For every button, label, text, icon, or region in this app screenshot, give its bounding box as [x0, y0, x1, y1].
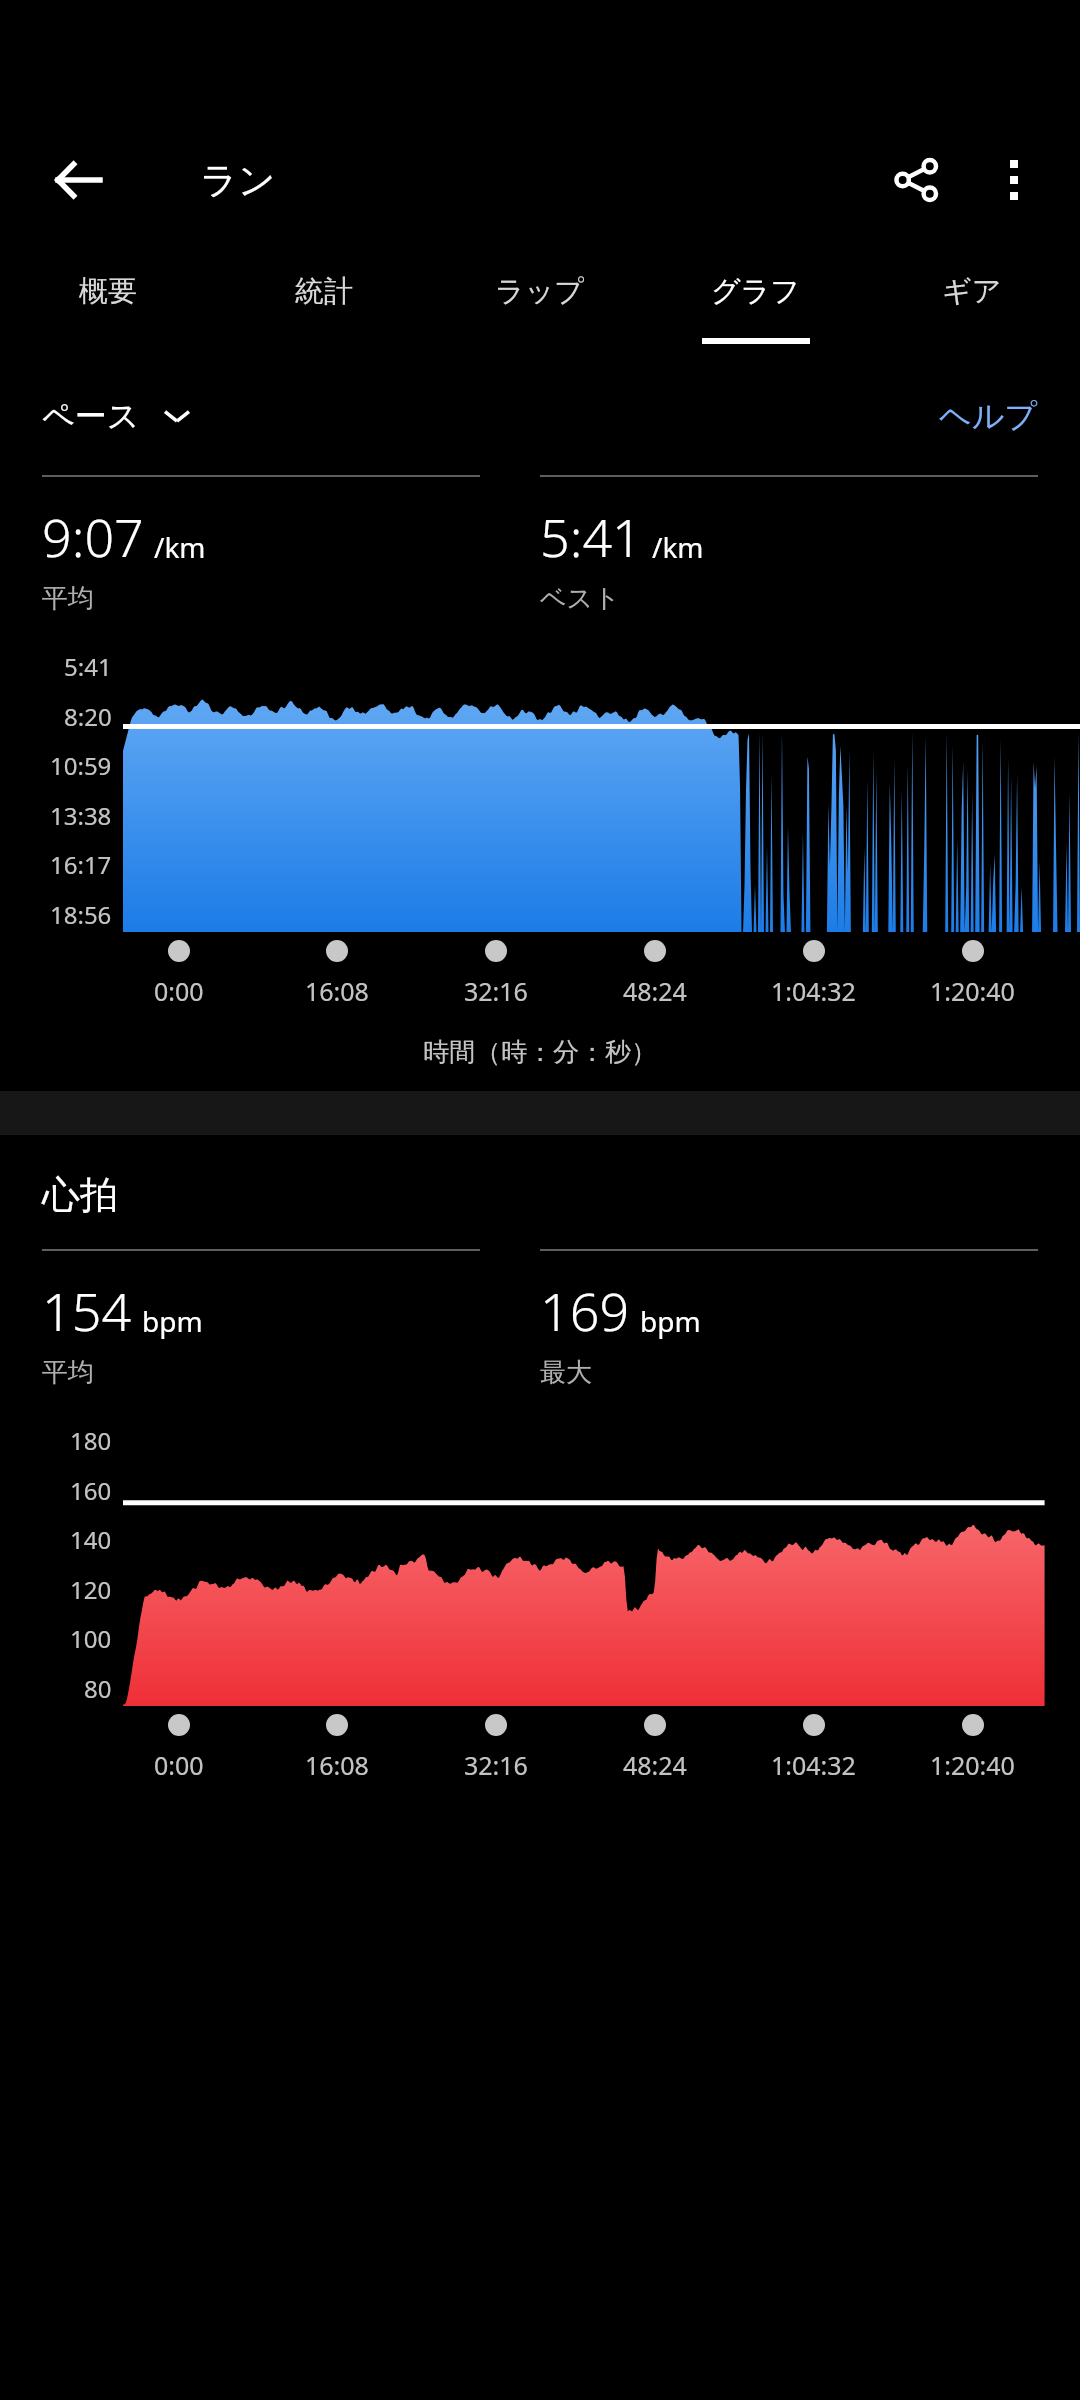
staticText: 100 — [70, 1622, 112, 1655]
staticText: ラップ — [495, 273, 585, 310]
staticText: bpm — [142, 1302, 203, 1340]
button[interactable]: ペース — [42, 396, 190, 436]
staticText: 心拍 — [42, 1171, 118, 1219]
button[interactable]: グラフ — [648, 253, 864, 365]
staticText: 時間（時：分：秒） — [423, 1036, 657, 1069]
staticText: 1:20:40 — [930, 974, 1015, 1008]
staticText: 169 — [540, 1275, 630, 1346]
staticText: 48:24 — [623, 974, 687, 1008]
staticText: 16:08 — [305, 1748, 369, 1782]
staticText: 140 — [70, 1523, 112, 1556]
staticText: 48:24 — [623, 1748, 687, 1782]
staticText: 32:16 — [464, 1748, 528, 1782]
staticText: ラン — [200, 157, 276, 204]
staticText: /km — [154, 528, 206, 566]
button[interactable]: ラップ — [432, 253, 648, 365]
staticText: 13:38 — [50, 799, 112, 832]
button[interactable]: ヘルプ — [939, 396, 1038, 436]
button[interactable]: 共有 — [870, 134, 962, 226]
staticText: 154 — [42, 1275, 132, 1346]
staticText: ベスト — [540, 582, 620, 615]
staticText: ヘルプ — [939, 396, 1038, 436]
staticText: 平均 — [42, 582, 94, 615]
staticText: 1:20:40 — [930, 1748, 1015, 1782]
staticText: 1:04:32 — [771, 974, 856, 1008]
staticText: /km — [652, 528, 704, 566]
staticText: 10:59 — [50, 749, 112, 782]
staticText: 16:08 — [305, 974, 369, 1008]
staticText: 0:00 — [154, 974, 204, 1008]
staticText: 5:41 — [540, 501, 642, 572]
button[interactable]: 統計 — [216, 253, 432, 365]
staticText: 最大 — [540, 1356, 592, 1389]
staticText: 5:41 — [64, 650, 112, 683]
staticText: 120 — [70, 1573, 112, 1606]
staticText: 18:56 — [50, 898, 112, 931]
staticText: 1:04:32 — [771, 1748, 856, 1782]
staticText: グラフ — [711, 273, 801, 310]
staticText: 180 — [70, 1424, 112, 1457]
staticText: 9:07 — [42, 501, 144, 572]
staticText: 8:20 — [64, 700, 112, 733]
staticText: ペース — [42, 396, 140, 436]
staticText: 平均 — [42, 1356, 94, 1389]
button[interactable]: 概要 — [0, 253, 216, 365]
button[interactable]: 戻る — [34, 136, 122, 224]
staticText: 80 — [84, 1672, 112, 1705]
staticText: 16:17 — [50, 848, 112, 881]
staticText: 0:00 — [154, 1748, 204, 1782]
staticText: 160 — [70, 1474, 112, 1507]
staticText: ギア — [942, 273, 1002, 310]
staticText: 統計 — [295, 273, 353, 310]
button[interactable]: その他のオプション — [970, 136, 1058, 224]
button[interactable]: ギア — [864, 253, 1080, 365]
staticText: 概要 — [79, 273, 137, 310]
staticText: 32:16 — [464, 974, 528, 1008]
staticText: bpm — [640, 1302, 701, 1340]
